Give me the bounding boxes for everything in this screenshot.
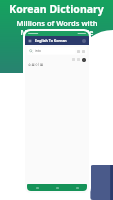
staticText: 소용이 됨 — [28, 62, 44, 67]
staticText: into — [35, 49, 41, 53]
button[interactable]: Recents — [67, 184, 87, 191]
button[interactable]: Search — [27, 47, 87, 55]
staticText: Korean Dictionary — [9, 2, 104, 16]
button[interactable]: 소용이 됨 — [28, 62, 86, 67]
staticText: Millions of Words with Meaning & Example — [16, 18, 98, 37]
other: Menu — [28, 39, 32, 43]
button[interactable]: Speak — [82, 58, 86, 62]
button[interactable]: Menu — [25, 36, 89, 45]
button[interactable]: More options — [82, 39, 86, 43]
button[interactable]: Back — [27, 184, 47, 191]
button[interactable]: Home — [47, 184, 67, 191]
other: Search — [29, 49, 33, 53]
staticText: English To Korean — [35, 38, 67, 43]
